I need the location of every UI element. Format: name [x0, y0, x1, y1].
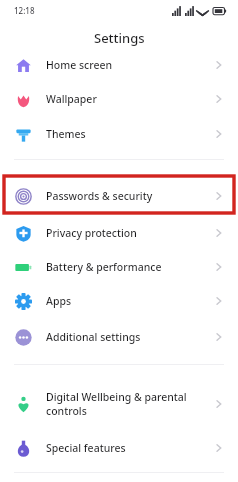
button[interactable]: Apps: [0, 284, 238, 318]
button[interactable]: Battery & performance: [0, 250, 238, 284]
staticText: Passwords & security: [46, 189, 153, 203]
button[interactable]: Privacy protection: [0, 216, 238, 250]
button[interactable]: Additional settings: [0, 320, 238, 354]
staticText: Wallpaper: [46, 92, 97, 106]
button[interactable]: Themes: [0, 117, 238, 151]
staticText: 12:18: [14, 5, 35, 16]
staticText: Themes: [46, 127, 86, 141]
staticText: Home screen: [46, 58, 113, 72]
button[interactable]: Passwords & security: [0, 179, 238, 213]
staticText: Digital Wellbeing & parental controls: [46, 390, 187, 418]
button[interactable]: Special features: [0, 431, 238, 465]
staticText: Additional settings: [46, 330, 141, 344]
button[interactable]: Wallpaper: [0, 82, 238, 116]
button[interactable]: Digital Wellbeing & parental controls: [0, 383, 238, 425]
staticText: Apps: [46, 294, 72, 308]
staticText: Settings: [94, 29, 145, 47]
staticText: Privacy protection: [46, 226, 137, 240]
staticText: Battery & performance: [46, 260, 162, 274]
staticText: Special features: [46, 441, 126, 455]
button[interactable]: Home screen: [0, 48, 238, 82]
